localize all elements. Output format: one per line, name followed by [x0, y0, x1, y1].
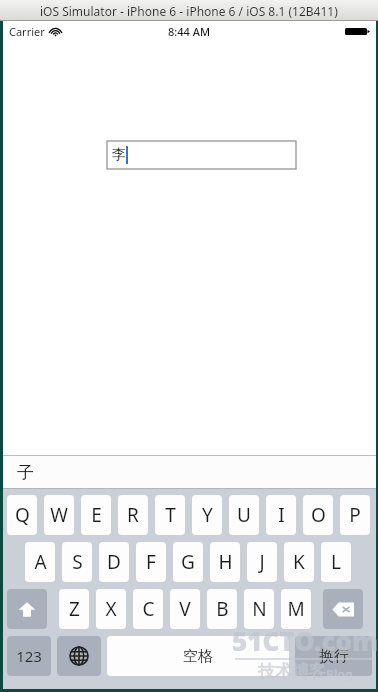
- button[interactable]: O: [303, 495, 333, 535]
- button[interactable]: G: [173, 542, 203, 582]
- staticText: 李: [112, 146, 126, 164]
- button[interactable]: H: [210, 542, 240, 582]
- button[interactable]: U: [229, 495, 259, 535]
- button[interactable]: X: [96, 589, 126, 629]
- staticText: R: [127, 502, 139, 528]
- button[interactable]: W: [44, 495, 74, 535]
- staticText: B: [216, 596, 229, 622]
- staticText: L: [331, 549, 341, 575]
- staticText: 51CTO.com: [232, 623, 378, 658]
- staticText: N: [252, 596, 267, 622]
- staticText: Z: [69, 596, 80, 622]
- staticText: O: [311, 502, 326, 528]
- button[interactable]: L: [321, 542, 351, 582]
- button[interactable]: Shift: [7, 589, 47, 629]
- button[interactable]: V: [170, 589, 200, 629]
- staticText: 123: [16, 646, 42, 666]
- button[interactable]: 李: [107, 141, 296, 169]
- staticText: A: [34, 549, 47, 575]
- staticText: Y: [202, 502, 213, 528]
- button[interactable]: N: [244, 589, 274, 629]
- button[interactable]: D: [99, 542, 129, 582]
- button[interactable]: Switch keyboard: [57, 636, 101, 676]
- button[interactable]: B: [207, 589, 237, 629]
- staticText: 技术博客: [258, 661, 326, 682]
- button[interactable]: 子: [3, 456, 376, 488]
- button[interactable]: 空格: [107, 636, 289, 676]
- staticText: S: [72, 549, 83, 575]
- button[interactable]: F: [136, 542, 166, 582]
- staticText: 子: [17, 462, 34, 483]
- staticText: F: [146, 549, 156, 575]
- button[interactable]: A: [25, 542, 55, 582]
- button[interactable]: Q: [7, 495, 37, 535]
- button[interactable]: S: [62, 542, 92, 582]
- button[interactable]: M: [281, 589, 311, 629]
- staticText: D: [107, 549, 121, 575]
- staticText: Q: [15, 502, 30, 528]
- staticText: G: [181, 549, 195, 575]
- staticText: T: [165, 502, 176, 528]
- staticText: 换行: [319, 647, 349, 666]
- staticText: J: [259, 549, 265, 575]
- staticText: 8:44 AM: [168, 24, 211, 39]
- button[interactable]: P: [340, 495, 370, 535]
- button[interactable]: Z: [59, 589, 89, 629]
- button[interactable]: Delete: [323, 589, 363, 629]
- button[interactable]: C: [133, 589, 163, 629]
- staticText: H: [218, 549, 233, 575]
- button[interactable]: I: [266, 495, 296, 535]
- button[interactable]: R: [118, 495, 148, 535]
- staticText: Carrier: [9, 24, 45, 39]
- staticText: K: [293, 549, 305, 575]
- staticText: W: [50, 502, 68, 528]
- button[interactable]: 123: [7, 636, 51, 676]
- button[interactable]: T: [155, 495, 185, 535]
- staticText: M: [287, 596, 305, 622]
- button[interactable]: E: [81, 495, 111, 535]
- staticText: P: [349, 502, 361, 528]
- button[interactable]: Y: [192, 495, 222, 535]
- staticText: iOS Simulator - iPhone 6 - iPhone 6 / iO…: [40, 3, 338, 19]
- button[interactable]: K: [284, 542, 314, 582]
- staticText: 空格: [183, 647, 213, 666]
- staticText: E: [91, 502, 102, 528]
- staticText: U: [237, 502, 251, 528]
- staticText: I: [278, 502, 285, 528]
- button[interactable]: 换行: [295, 636, 372, 676]
- staticText: X: [105, 596, 117, 622]
- staticText: V: [179, 596, 191, 622]
- button[interactable]: J: [247, 542, 277, 582]
- staticText: Blog: [326, 666, 353, 682]
- staticText: C: [142, 596, 155, 622]
